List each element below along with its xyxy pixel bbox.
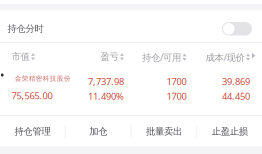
button[interactable]: 持仓分时开关 <box>222 22 252 35</box>
staticText: 75,565.00 <box>11 89 52 102</box>
staticText: 加仓 <box>89 126 107 137</box>
staticText: 44.450 <box>222 90 250 102</box>
staticText: 持仓管理 <box>14 126 50 137</box>
button[interactable]: 持仓管理 <box>0 116 65 147</box>
button[interactable]: 止盈止损 <box>197 116 262 147</box>
staticText: 1700 <box>166 90 186 102</box>
staticText: 持仓/可用 <box>142 51 181 63</box>
button[interactable]: 金荣精密科技股份 <box>0 0 262 154</box>
button[interactable]: 成本/现价 <box>205 51 250 63</box>
button[interactable]: 更多列 <box>251 52 256 59</box>
staticText: 止盈止损 <box>212 126 248 137</box>
button[interactable]: 持仓/可用 <box>142 51 186 63</box>
staticText: 批量卖出 <box>146 126 182 137</box>
staticText: 成本/现价 <box>205 51 244 63</box>
staticText: 市值 <box>11 51 29 62</box>
button[interactable]: 盈亏 <box>100 51 124 62</box>
staticText: 39.869 <box>222 75 250 88</box>
button[interactable]: 市值 <box>11 51 35 62</box>
staticText: 11.490% <box>88 90 124 102</box>
button[interactable]: 批量卖出 <box>131 116 196 147</box>
staticText: 持仓分时 <box>7 23 43 34</box>
button[interactable]: 加仓 <box>66 116 131 147</box>
staticText: 1700 <box>166 75 186 88</box>
staticText: 7,737.98 <box>88 75 124 88</box>
staticText: 金荣精密科技股份 <box>15 74 71 83</box>
staticText: 盈亏 <box>100 51 118 62</box>
